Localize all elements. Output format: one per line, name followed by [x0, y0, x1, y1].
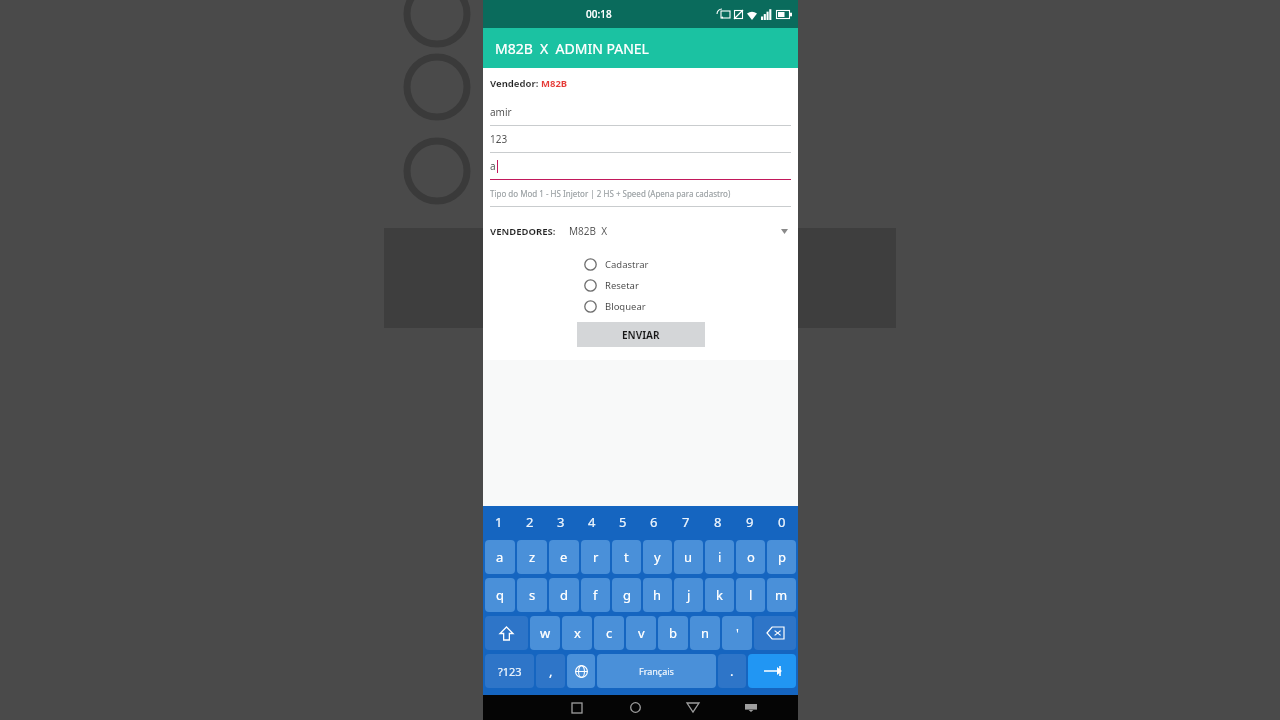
staticText: Tipo do Mod 1 - HS Injetor | 2 HS + Spee… [490, 188, 731, 199]
button[interactable]: Shift [485, 616, 528, 650]
staticText: Bloquear [605, 300, 646, 313]
other: Enter [764, 665, 781, 677]
staticText: 123 [490, 132, 508, 146]
button[interactable]: , [536, 654, 565, 688]
button[interactable]: 4 [576, 506, 607, 538]
button[interactable]: r [581, 540, 610, 574]
button[interactable]: . [718, 654, 746, 688]
staticText: 5 [619, 513, 627, 531]
staticText: j [687, 586, 691, 604]
button[interactable]: p [767, 540, 796, 574]
button[interactable]: Back [664, 703, 722, 712]
button[interactable]: h [643, 578, 672, 612]
button[interactable]: Enter [748, 654, 796, 688]
staticText: x [574, 624, 581, 642]
staticText: 1 [495, 513, 503, 531]
button[interactable]: ?123 [485, 654, 534, 688]
button[interactable]: j [674, 578, 703, 612]
staticText: c [606, 624, 613, 642]
button[interactable]: w [530, 616, 560, 650]
button[interactable]: s [517, 578, 547, 612]
button[interactable]: a [490, 153, 791, 180]
staticText: b [669, 624, 677, 642]
staticText: q [496, 586, 504, 604]
staticText: 9 [746, 513, 754, 531]
staticText: 2 [526, 513, 534, 531]
button[interactable]: M82B X ADMIN PANEL [483, 28, 798, 68]
button[interactable]: x [562, 616, 592, 650]
staticText: Cadastrar [605, 258, 649, 271]
staticText: m [775, 586, 788, 604]
button[interactable]: o [736, 540, 765, 574]
staticText: d [560, 586, 568, 604]
staticText: o [747, 548, 755, 566]
staticText: ENVIAR [622, 328, 660, 342]
staticText: e [560, 548, 568, 566]
button[interactable]: c [594, 616, 624, 650]
button[interactable]: l [736, 578, 765, 612]
button[interactable]: Change language [567, 654, 595, 688]
staticText: Resetar [605, 279, 639, 292]
button[interactable]: Cadastrar [483, 254, 798, 275]
button[interactable]: 9 [734, 506, 766, 538]
button[interactable]: 3 [545, 506, 576, 538]
other: Backspace [767, 627, 784, 639]
button[interactable]: VENDEDORES: [483, 220, 798, 242]
other: Change language [575, 665, 588, 678]
button[interactable]: a [485, 540, 515, 574]
button[interactable]: f [581, 578, 610, 612]
staticText: p [778, 548, 786, 566]
button[interactable]: y [643, 540, 672, 574]
button[interactable]: 2 [514, 506, 545, 538]
staticText: 6 [650, 513, 658, 531]
button[interactable]: Resetar [483, 275, 798, 296]
button[interactable]: z [517, 540, 547, 574]
button[interactable]: q [485, 578, 515, 612]
button[interactable]: 0 [766, 506, 798, 538]
button[interactable]: 1 [483, 506, 514, 538]
button[interactable]: Hide keyboard [722, 704, 780, 712]
button[interactable]: Backspace [754, 616, 796, 650]
button[interactable]: ' [722, 616, 752, 650]
button[interactable]: Home [606, 702, 664, 713]
button[interactable]: e [549, 540, 579, 574]
staticText: y [654, 548, 661, 566]
staticText: g [623, 586, 631, 604]
button[interactable]: n [690, 616, 720, 650]
button[interactable]: d [549, 578, 579, 612]
staticText: M82B X [569, 224, 608, 238]
button[interactable]: 123 [490, 126, 791, 153]
button[interactable]: amir [490, 99, 791, 126]
staticText: ?123 [498, 664, 522, 679]
staticText: h [653, 586, 662, 604]
button[interactable]: 8 [702, 506, 734, 538]
staticText: VENDEDORES: [490, 225, 556, 238]
button[interactable]: k [705, 578, 734, 612]
staticText: w [540, 624, 551, 642]
button[interactable]: Bloquear [483, 296, 798, 317]
staticText: r [593, 548, 599, 566]
staticText: z [529, 548, 536, 566]
button[interactable]: i [705, 540, 734, 574]
button[interactable]: Recent apps [548, 703, 606, 713]
button[interactable]: b [658, 616, 688, 650]
staticText: t [624, 548, 629, 566]
button[interactable]: Français [597, 654, 716, 688]
button[interactable]: 6 [638, 506, 670, 538]
button[interactable]: u [674, 540, 703, 574]
button[interactable]: Tipo do Mod 1 - HS Injetor | 2 HS + Spee… [490, 180, 791, 207]
staticText: n [701, 624, 710, 642]
button[interactable]: 7 [670, 506, 702, 538]
staticText: . [730, 662, 734, 680]
staticText: amir [490, 105, 512, 119]
button[interactable]: v [626, 616, 656, 650]
button[interactable]: 5 [607, 506, 638, 538]
button[interactable]: t [612, 540, 641, 574]
staticText: k [716, 586, 723, 604]
staticText: M82B X ADMIN PANEL [495, 39, 649, 58]
staticText: f [593, 586, 598, 604]
button[interactable]: m [767, 578, 796, 612]
button[interactable]: g [612, 578, 641, 612]
staticText: ' [736, 624, 739, 642]
button[interactable]: ENVIAR [577, 322, 705, 347]
